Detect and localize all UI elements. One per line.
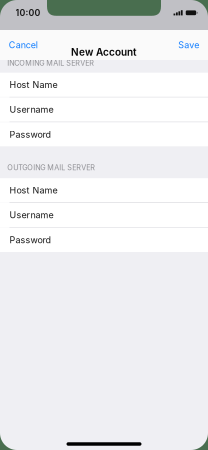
staticText: Password xyxy=(9,129,50,140)
staticText: Password xyxy=(9,234,50,245)
button[interactable]: Host Name xyxy=(0,73,208,97)
staticText: Host Name xyxy=(9,185,57,196)
staticText: Host Name xyxy=(9,79,57,90)
button[interactable]: Cancel xyxy=(6,36,41,54)
staticText: INCOMING MAIL SERVER xyxy=(7,59,94,68)
button[interactable]: Username xyxy=(0,203,208,227)
staticText: OUTGOING MAIL SERVER xyxy=(7,163,95,172)
staticText: New Account xyxy=(71,46,137,58)
staticText: Cancel xyxy=(9,40,38,50)
button[interactable]: Host Name xyxy=(0,178,208,202)
staticText: Save xyxy=(178,40,199,50)
staticText: Username xyxy=(9,210,53,220)
staticText: 10:00 xyxy=(15,7,40,18)
button[interactable]: Password xyxy=(0,228,208,252)
button[interactable]: Save xyxy=(175,36,202,54)
button[interactable]: Password xyxy=(0,122,208,146)
staticText: Username xyxy=(9,104,53,115)
button[interactable]: Username xyxy=(0,97,208,122)
